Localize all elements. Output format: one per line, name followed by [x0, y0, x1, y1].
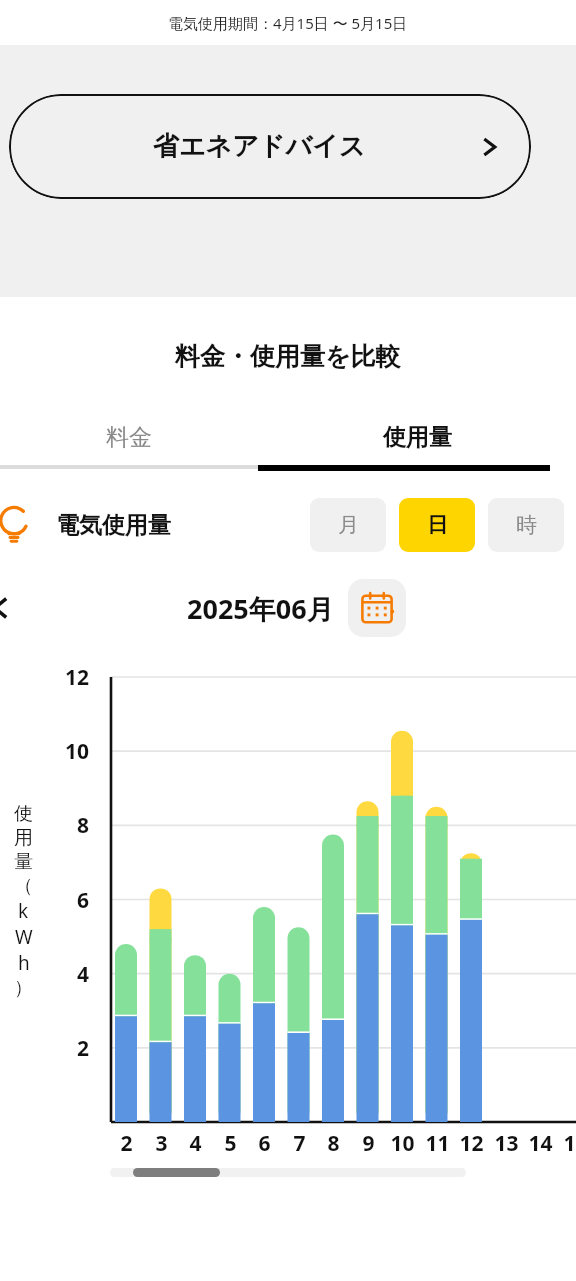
button[interactable]: 使用量	[258, 410, 576, 465]
button[interactable]: 月	[310, 498, 386, 552]
staticText: W	[15, 924, 33, 950]
staticText: ）	[14, 976, 33, 1000]
staticText: h	[18, 950, 30, 976]
staticText: 10	[390, 1129, 415, 1158]
staticText: 15	[563, 1129, 576, 1158]
staticText: k	[18, 898, 29, 924]
staticText: 13	[494, 1129, 519, 1158]
staticText: 11	[425, 1129, 450, 1158]
staticText: 12	[64, 663, 89, 692]
staticText: 省エネアドバイス	[153, 130, 366, 163]
staticText: 14	[528, 1129, 553, 1158]
staticText: 12	[459, 1129, 484, 1158]
staticText: 量	[14, 850, 33, 874]
staticText: 7	[293, 1129, 306, 1158]
staticText: 用	[14, 826, 33, 850]
button[interactable]: Pick date	[348, 579, 406, 637]
staticText: 2025年06月	[187, 590, 334, 627]
staticText: 6	[76, 886, 89, 915]
staticText: 9	[362, 1129, 375, 1158]
staticText: 3	[155, 1129, 168, 1158]
staticText: 使用量	[383, 423, 452, 452]
staticText: 料金・使用量を比較	[175, 341, 401, 372]
staticText: 2	[120, 1129, 133, 1158]
button[interactable]: 日	[399, 498, 475, 552]
button[interactable]: Previous month	[0, 595, 14, 621]
button[interactable]: 時	[488, 498, 564, 552]
staticText: 時	[516, 512, 537, 538]
staticText: 10	[64, 737, 89, 766]
staticText: 月	[338, 512, 359, 538]
staticText: 2	[76, 1034, 89, 1063]
staticText: 8	[327, 1129, 340, 1158]
button[interactable]: 料金	[0, 410, 258, 465]
staticText: 5	[224, 1129, 237, 1158]
staticText: 日	[427, 512, 448, 538]
staticText: 使	[14, 802, 33, 826]
staticText: 8	[76, 811, 89, 840]
staticText: 4	[76, 960, 89, 989]
staticText: 電気使用期間：4月15日 〜 5月15日	[168, 13, 408, 33]
staticText: 電気使用量	[56, 511, 171, 540]
staticText: 4	[189, 1129, 202, 1158]
staticText: 6	[258, 1129, 271, 1158]
staticText: （	[14, 874, 33, 898]
button[interactable]: 省エネアドバイス	[9, 94, 531, 199]
staticText: 料金	[106, 423, 152, 452]
